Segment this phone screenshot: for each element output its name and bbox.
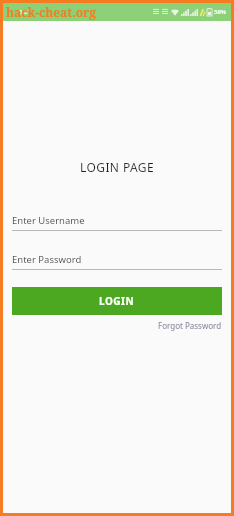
staticText: LOGIN PAGE [3,159,231,175]
button[interactable]: LOGIN [12,287,222,315]
button[interactable]: Forgot Password [158,320,222,331]
staticText: LOGIN [99,294,135,308]
staticText: Enter Password [12,253,82,266]
staticText: hack-cheat.org [6,4,97,20]
button[interactable]: Enter Username [12,214,222,231]
staticText: 58% [214,8,227,16]
button[interactable]: Enter Password [12,253,222,270]
staticText: Enter Username [12,214,85,227]
staticText: Forgot Password [158,320,222,331]
staticText: 5:21 [19,8,31,16]
